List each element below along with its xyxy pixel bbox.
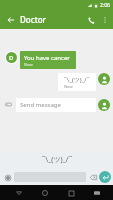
button[interactable]: Call [84, 13, 98, 27]
button[interactable]: You have cancer [20, 51, 76, 69]
staticText: You have cancer [24, 54, 70, 62]
staticText: ¯\_(ツ)_/¯ [64, 76, 90, 84]
button[interactable]: Keyboard [91, 187, 103, 199]
button[interactable]: Settings [2, 172, 13, 183]
button[interactable]: More options [98, 13, 111, 26]
button[interactable]: Attach [3, 99, 14, 110]
staticText: D [9, 54, 14, 62]
staticText: Doctor [20, 14, 46, 25]
staticText: Now [64, 84, 73, 89]
staticText: Now [24, 62, 33, 67]
button[interactable]: Back [4, 13, 17, 26]
button[interactable]: Send message [16, 98, 96, 112]
staticText: 2:06 [100, 2, 110, 9]
button[interactable]: Contact avatar [98, 99, 110, 111]
button[interactable]: Backspace [88, 172, 98, 182]
button[interactable]: Send [99, 171, 111, 183]
button[interactable]: ¯\_(ツ)_/¯ [42, 155, 72, 165]
button[interactable]: Home [39, 187, 51, 199]
button[interactable]: Contact avatar [98, 73, 110, 85]
button[interactable]: ¯\_(ツ)_/¯ [58, 73, 96, 91]
button[interactable]: Back [13, 187, 25, 199]
button[interactable]: Recent apps [65, 187, 77, 199]
staticText: Send message [20, 101, 61, 109]
